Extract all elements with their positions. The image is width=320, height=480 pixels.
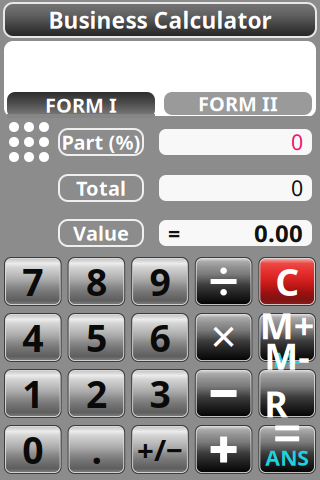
staticText: Value <box>73 220 129 246</box>
button[interactable]: 0 <box>159 129 312 155</box>
button[interactable]: Total <box>59 175 143 201</box>
button[interactable]: 6 <box>131 313 189 362</box>
button[interactable]: Multiply <box>195 313 252 362</box>
button[interactable]: Minus <box>195 369 252 418</box>
staticText: FORM I <box>45 92 117 118</box>
staticText: M+ <box>260 301 315 349</box>
button[interactable]: 2 <box>68 369 125 418</box>
button[interactable]: = <box>159 220 312 246</box>
button[interactable]: Part (%) <box>59 129 143 155</box>
staticText: ANS <box>265 443 309 472</box>
staticText: ✕ <box>209 318 238 357</box>
button[interactable]: Clear <box>258 257 316 306</box>
staticText: 4 <box>22 313 43 362</box>
staticText: C <box>275 257 299 306</box>
button[interactable]: 3 <box>131 369 189 418</box>
button[interactable]: 9 <box>131 257 189 306</box>
button[interactable]: +/− <box>131 425 189 474</box>
button[interactable]: 1 <box>4 369 62 418</box>
button[interactable]: Equals <box>258 425 316 474</box>
staticText: +/− <box>137 430 183 469</box>
staticText: 0 <box>22 425 43 474</box>
button[interactable]: 0 <box>159 175 312 201</box>
button[interactable]: 0 <box>4 425 62 474</box>
staticText: Part (%) <box>61 129 140 155</box>
staticText: 3 <box>149 369 170 418</box>
staticText: 0 <box>291 174 303 202</box>
button[interactable]: . <box>68 425 125 474</box>
staticText: MC <box>268 423 306 455</box>
staticText: 0.00 <box>254 217 303 249</box>
staticText: MR <box>264 332 310 427</box>
button[interactable]: Memory add <box>258 313 316 362</box>
button[interactable]: Value <box>59 220 143 246</box>
staticText: 6 <box>149 313 170 362</box>
staticText: 8 <box>86 257 107 306</box>
button[interactable]: 8 <box>68 257 125 306</box>
button[interactable]: Divide <box>195 257 252 306</box>
staticText: FORM II <box>198 90 278 117</box>
staticText: 7 <box>22 257 43 306</box>
staticText: 0 <box>291 128 303 156</box>
button[interactable]: 5 <box>68 313 125 362</box>
staticText: Total <box>76 175 126 201</box>
staticText: 1 <box>22 369 43 418</box>
staticText: 2 <box>86 369 107 418</box>
button[interactable]: Plus <box>195 425 252 474</box>
button[interactable]: 4 <box>4 313 62 362</box>
staticText: 5 <box>86 313 107 362</box>
staticText: 9 <box>149 257 170 306</box>
button[interactable]: FORM I <box>7 92 155 118</box>
staticText: Business Calculator <box>48 5 271 35</box>
button[interactable]: Memory recall <box>258 369 316 418</box>
staticText: M- <box>274 345 301 373</box>
staticText: . <box>91 425 101 474</box>
button[interactable]: FORM II <box>164 92 312 115</box>
button[interactable]: 7 <box>4 257 62 306</box>
staticText: = <box>168 219 180 247</box>
